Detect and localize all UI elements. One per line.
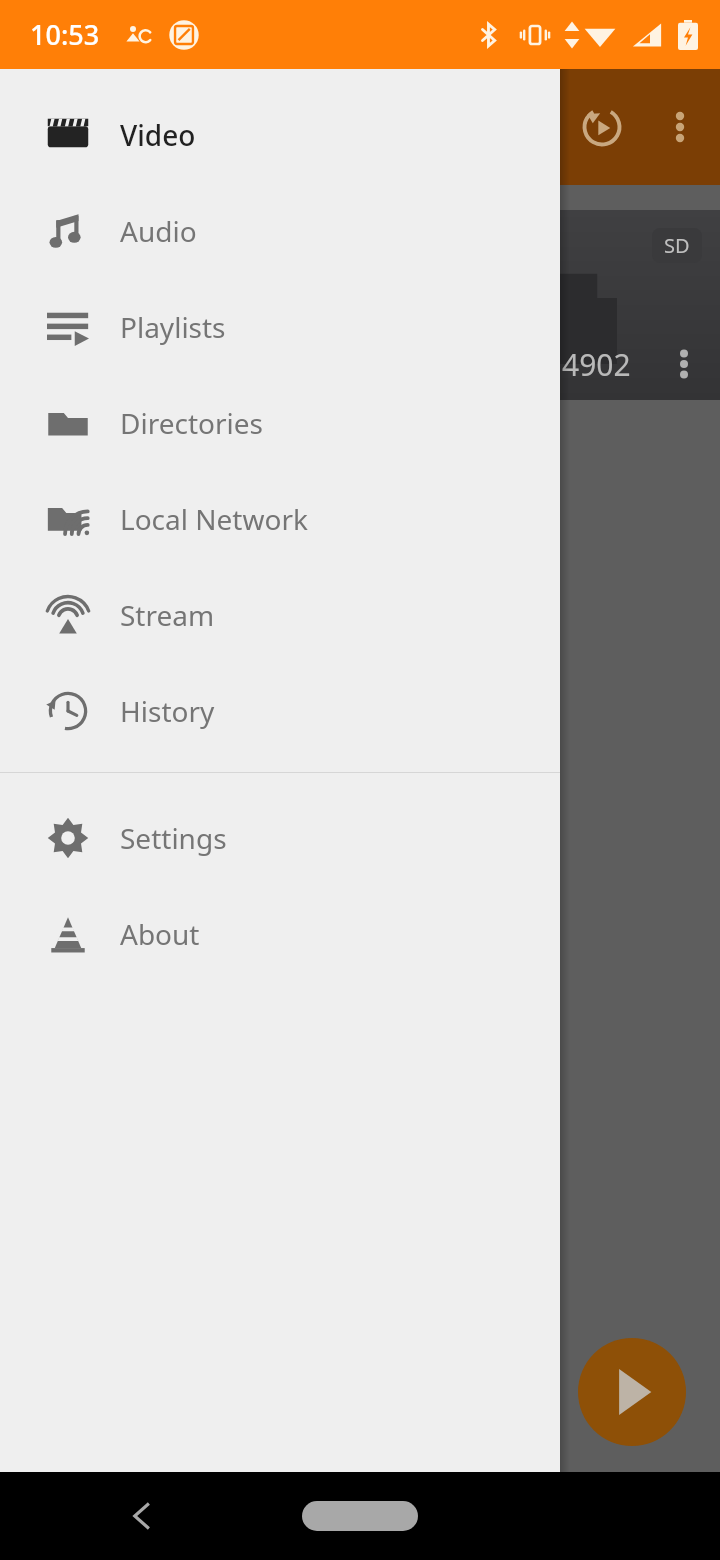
button[interactable]: More options (652, 99, 708, 155)
staticText: 10:53 (30, 16, 100, 53)
staticText: 4902 (562, 344, 631, 385)
button[interactable]: SD (560, 210, 720, 400)
staticText: Audio (120, 212, 197, 250)
button[interactable]: Audio (0, 183, 560, 279)
button[interactable]: About (0, 886, 560, 982)
button[interactable]: Local Network (0, 471, 560, 567)
button[interactable]: Playlists (0, 279, 560, 375)
staticText: Local Network (120, 500, 308, 538)
button[interactable]: Home (302, 1501, 418, 1531)
button[interactable]: Settings (0, 790, 560, 886)
staticText: History (120, 692, 215, 730)
staticText: Settings (120, 819, 227, 857)
button[interactable]: Play (578, 1338, 686, 1446)
staticText: Stream (120, 596, 215, 634)
button[interactable]: History (0, 663, 560, 759)
staticText: SD (664, 232, 690, 259)
button[interactable]: Directories (0, 375, 560, 471)
staticText: Directories (120, 404, 263, 442)
button[interactable]: Resume playback (574, 99, 630, 155)
button[interactable]: Video (0, 87, 560, 183)
button[interactable]: Stream (0, 567, 560, 663)
staticText: About (120, 915, 200, 953)
staticText: Playlists (120, 308, 226, 346)
staticText: Video (120, 116, 196, 154)
button[interactable]: Back (112, 1486, 172, 1546)
button[interactable]: Item options (662, 342, 706, 386)
